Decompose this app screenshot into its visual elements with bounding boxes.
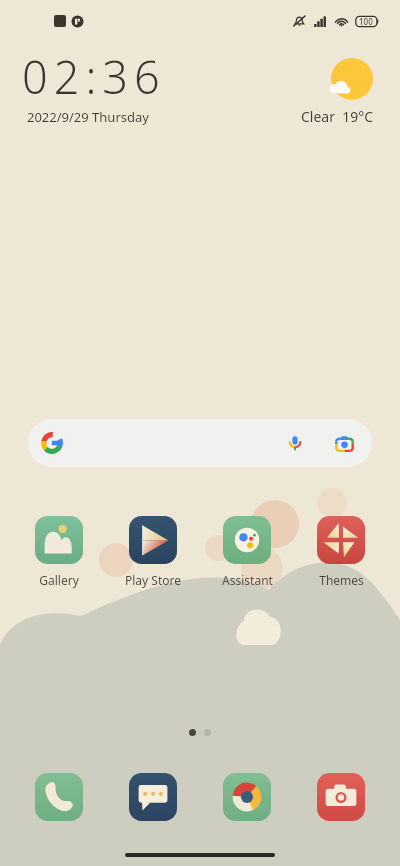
button[interactable]: Phone	[24, 773, 94, 821]
staticText: Assistant	[222, 572, 273, 588]
button[interactable]: Google Lens	[331, 430, 357, 456]
button[interactable]: Chrome	[212, 773, 282, 821]
staticText: 2022/9/29 Thursday	[27, 108, 149, 126]
staticText: 100	[359, 16, 373, 27]
staticText: Gallery	[39, 572, 79, 588]
button[interactable]: Themes	[306, 516, 376, 588]
staticText: Clear 19°C	[301, 107, 374, 126]
button[interactable]: Weather	[324, 52, 380, 108]
button[interactable]: Play Store	[118, 516, 188, 588]
button[interactable]: Assistant	[212, 516, 282, 588]
button[interactable]: Voice search	[28, 419, 372, 467]
button[interactable]: Voice search	[282, 430, 308, 456]
button[interactable]: Messages	[118, 773, 188, 821]
staticText: 02:36	[22, 46, 166, 107]
staticText: Themes	[319, 572, 364, 588]
staticText: Play Store	[125, 572, 181, 588]
button[interactable]: Gallery	[24, 516, 94, 588]
button[interactable]: Camera	[306, 773, 376, 821]
